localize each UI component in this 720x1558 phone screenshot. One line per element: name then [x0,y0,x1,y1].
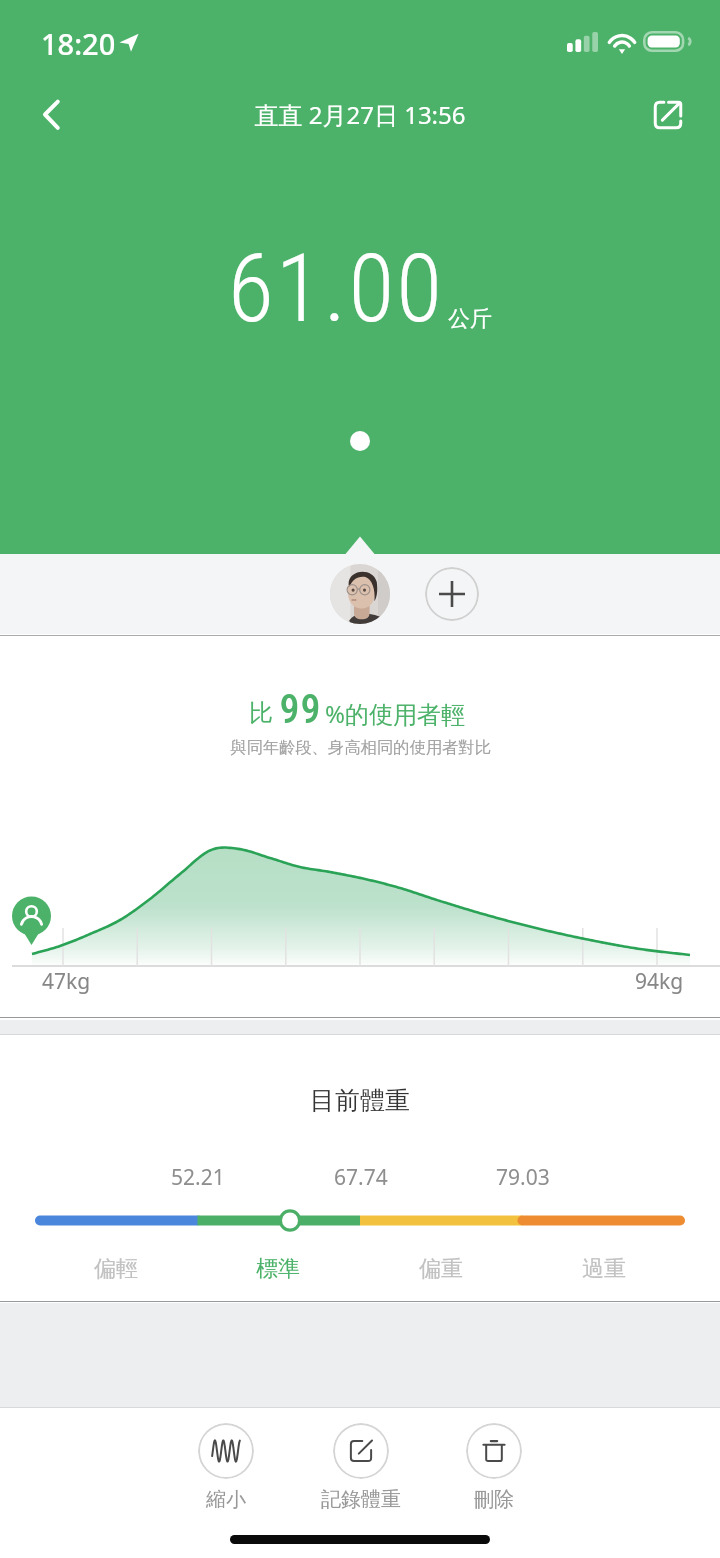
button[interactable]: 縮小 [176,1423,276,1512]
staticText: 目前體重 [310,1085,410,1116]
staticText: 94kg [635,967,684,996]
button[interactable]: Add user [425,567,479,621]
staticText: 偏輕 [76,1255,156,1283]
button[interactable]: 刪除 [444,1423,544,1512]
button[interactable]: Share [640,87,696,143]
staticText: 記錄體重 [311,1487,411,1512]
staticText: 與同年齡段、身高相同的使用者對比 [230,737,491,758]
staticText: 偏重 [401,1255,481,1283]
staticText: 過重 [564,1255,644,1283]
staticText: 比 [249,698,273,728]
staticText: 標準 [238,1255,318,1283]
staticText: 79.03 [496,1163,550,1192]
staticText: %的使用者輕 [325,697,465,730]
staticText: 公斤 [448,305,492,333]
staticText: 18:20 [41,24,116,63]
staticText: 61.00 [228,234,445,344]
button[interactable]: 記錄體重 [311,1423,411,1512]
staticText: 刪除 [444,1487,544,1512]
staticText: 52.21 [171,1163,225,1192]
staticText: 縮小 [176,1487,276,1512]
staticText: 47kg [42,967,91,996]
staticText: 99 [279,686,321,733]
button[interactable]: Selected user [330,564,390,624]
staticText: 直直 2月27日 13:56 [254,98,466,131]
button[interactable]: Back [20,89,76,145]
staticText: 67.74 [334,1163,388,1192]
